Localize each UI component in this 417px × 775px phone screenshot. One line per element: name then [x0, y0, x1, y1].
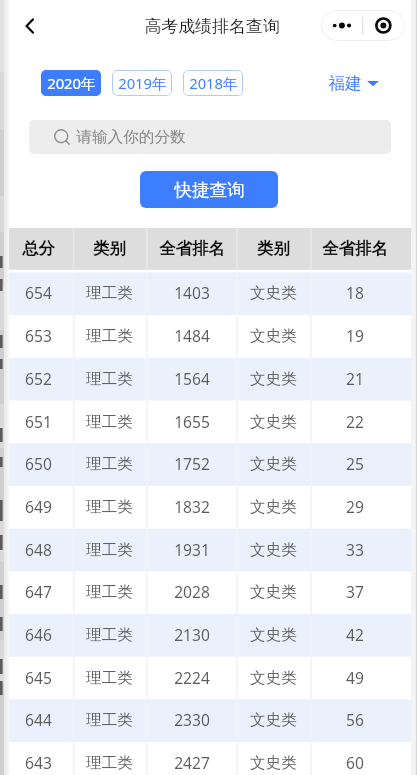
- button[interactable]: 福建: [328, 70, 379, 96]
- staticText: 类别: [257, 238, 290, 259]
- staticText: 理工类: [86, 625, 133, 645]
- staticText: 644: [25, 709, 52, 730]
- staticText: 652: [25, 368, 52, 389]
- staticText: 1484: [174, 325, 210, 346]
- staticText: 647: [25, 581, 52, 602]
- staticText: 21: [346, 368, 364, 389]
- button[interactable]: 2020年: [41, 70, 101, 96]
- button[interactable]: 651: [9, 401, 412, 444]
- staticText: 651: [25, 411, 52, 432]
- staticText: 2020年: [47, 73, 96, 93]
- staticText: 49: [346, 667, 364, 688]
- button[interactable]: 649: [9, 486, 412, 529]
- staticText: 理工类: [86, 582, 133, 602]
- staticText: 18: [346, 282, 364, 303]
- staticText: 理工类: [86, 326, 133, 346]
- staticText: 2130: [174, 624, 210, 645]
- button[interactable]: 654: [9, 272, 412, 315]
- staticText: 2224: [174, 667, 210, 688]
- staticText: 60: [346, 752, 364, 773]
- button[interactable]: 650: [9, 443, 412, 486]
- staticText: 653: [25, 325, 52, 346]
- staticText: 理工类: [86, 369, 133, 389]
- staticText: 全省排名: [322, 238, 388, 259]
- staticText: 文史类: [250, 668, 297, 688]
- staticText: 理工类: [86, 753, 133, 773]
- button[interactable]: Back: [10, 6, 50, 46]
- staticText: 1931: [174, 539, 210, 560]
- button[interactable]: 647: [9, 571, 412, 614]
- staticText: 2019年: [118, 73, 167, 93]
- staticText: 1752: [174, 453, 210, 474]
- staticText: 理工类: [86, 497, 133, 517]
- button[interactable]: 2018年: [183, 70, 243, 96]
- staticText: 文史类: [250, 497, 297, 517]
- staticText: 类别: [93, 238, 126, 259]
- button[interactable]: 请输入你的分数: [29, 120, 391, 154]
- staticText: 643: [25, 752, 52, 773]
- staticText: 56: [346, 709, 364, 730]
- staticText: 文史类: [250, 454, 297, 474]
- staticText: 648: [25, 539, 52, 560]
- button[interactable]: 653: [9, 315, 412, 358]
- staticText: 文史类: [250, 369, 297, 389]
- staticText: 理工类: [86, 412, 133, 432]
- button[interactable]: 快捷查询: [140, 171, 278, 208]
- staticText: 654: [25, 282, 52, 303]
- staticText: 文史类: [250, 412, 297, 432]
- staticText: 文史类: [250, 625, 297, 645]
- staticText: 2018年: [189, 73, 238, 93]
- staticText: 文史类: [250, 540, 297, 560]
- button[interactable]: 645: [9, 657, 412, 700]
- staticText: 25: [346, 453, 364, 474]
- staticText: 理工类: [86, 668, 133, 688]
- staticText: 高考成绩排名查询: [144, 16, 280, 37]
- staticText: 理工类: [86, 283, 133, 303]
- staticText: 19: [346, 325, 364, 346]
- staticText: 请输入你的分数: [76, 127, 186, 147]
- staticText: 649: [25, 496, 52, 517]
- staticText: 快捷查询: [174, 179, 245, 201]
- staticText: 2028: [174, 581, 210, 602]
- staticText: 2330: [174, 709, 210, 730]
- staticText: 福建: [328, 73, 362, 94]
- button[interactable]: 646: [9, 614, 412, 657]
- staticText: 文史类: [250, 582, 297, 602]
- staticText: 1655: [174, 411, 210, 432]
- staticText: 全省排名: [159, 238, 225, 259]
- button[interactable]: 648: [9, 529, 412, 572]
- staticText: 理工类: [86, 540, 133, 560]
- button[interactable]: More options: [321, 10, 405, 41]
- button[interactable]: 652: [9, 358, 412, 401]
- staticText: 37: [346, 581, 364, 602]
- staticText: 33: [346, 539, 364, 560]
- staticText: 文史类: [250, 710, 297, 730]
- staticText: 1832: [174, 496, 210, 517]
- staticText: 文史类: [250, 753, 297, 773]
- staticText: 2427: [174, 752, 210, 773]
- staticText: 文史类: [250, 283, 297, 303]
- staticText: 理工类: [86, 454, 133, 474]
- staticText: 理工类: [86, 710, 133, 730]
- staticText: 1403: [174, 282, 210, 303]
- staticText: 42: [346, 624, 364, 645]
- staticText: 22: [346, 411, 364, 432]
- button[interactable]: 643: [9, 742, 412, 775]
- button[interactable]: 644: [9, 699, 412, 742]
- staticText: 646: [25, 624, 52, 645]
- staticText: 645: [25, 667, 52, 688]
- staticText: 文史类: [250, 326, 297, 346]
- staticText: 650: [25, 453, 52, 474]
- button[interactable]: 2019年: [112, 70, 172, 96]
- staticText: 总分: [22, 238, 55, 259]
- staticText: 1564: [174, 368, 210, 389]
- staticText: 29: [346, 496, 364, 517]
